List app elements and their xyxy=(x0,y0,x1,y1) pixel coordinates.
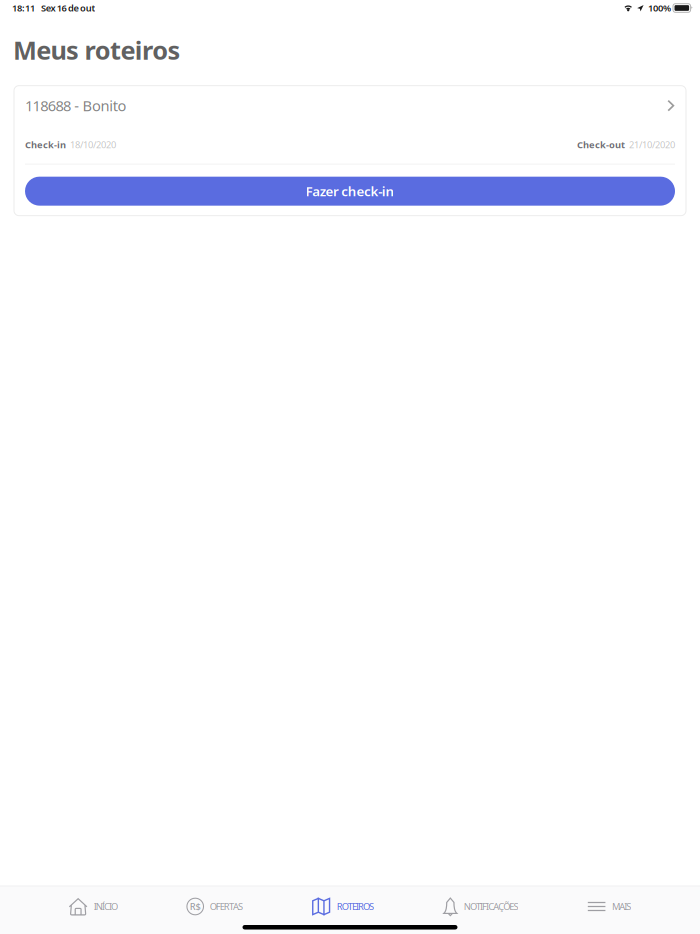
staticText: 18/10/2020 xyxy=(70,138,116,151)
staticText: Fazer check-in xyxy=(306,182,394,200)
staticText: 118688 - Bonito xyxy=(25,96,126,115)
button[interactable]: 118688 - Bonito xyxy=(14,86,686,126)
button[interactable]: ROTEIROS xyxy=(312,885,374,927)
staticText: Meus roteiros xyxy=(13,33,181,67)
staticText: NOTIFICAÇÕES xyxy=(464,900,518,913)
staticText: 18:11 xyxy=(12,2,35,14)
staticText: ROTEIROS xyxy=(337,900,374,913)
staticText: OFERTAS xyxy=(210,900,243,913)
staticText: MAIS xyxy=(612,900,631,913)
staticText: INÍCIO xyxy=(94,900,118,913)
button[interactable]: R$ xyxy=(187,886,243,926)
staticText: Check-out xyxy=(577,138,625,151)
button[interactable]: INÍCIO xyxy=(69,886,118,926)
staticText: Sex 16 de out xyxy=(41,2,95,14)
button[interactable]: MAIS xyxy=(587,886,631,926)
staticText: 100% xyxy=(648,2,671,14)
staticText: Check-in xyxy=(25,138,66,151)
button[interactable]: Fazer check-in xyxy=(25,177,675,206)
staticText: 21/10/2020 xyxy=(629,138,675,151)
staticText: R$ xyxy=(190,900,201,913)
button[interactable]: NOTIFICAÇÕES xyxy=(443,886,518,927)
